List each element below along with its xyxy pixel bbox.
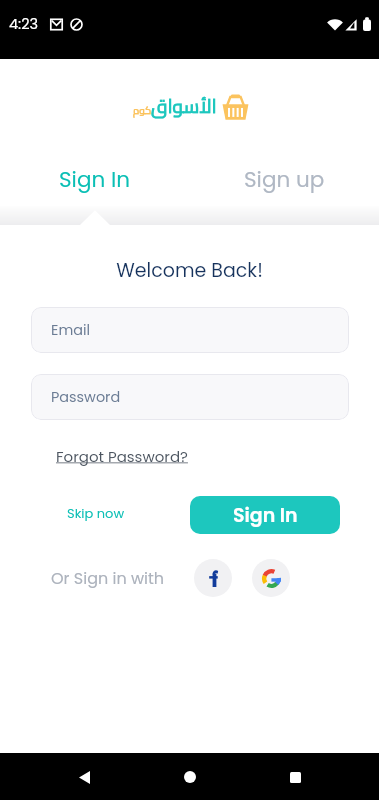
staticText: Forgot Password? [56,446,188,467]
button[interactable]: Recent apps [273,755,317,799]
staticText: Welcome Back! [0,257,379,284]
staticText: Sign In [233,502,298,529]
button[interactable]: Skip now [59,498,133,528]
staticText: Sign In [59,164,130,194]
button[interactable]: Forgot Password? [52,443,192,470]
staticText: Or Sign in with [51,567,165,589]
staticText: Sign up [244,164,325,194]
button[interactable]: Sign In [0,159,189,199]
button[interactable]: Sign In [190,496,340,534]
button[interactable]: Sign in with Facebook [194,559,232,597]
staticText: كوم. [133,101,154,120]
staticText: الأسواق [151,88,217,124]
button[interactable]: Back [62,755,106,799]
staticText: Password [51,387,121,407]
staticText: Email [51,320,91,340]
staticText: 4:23 [9,14,39,34]
button[interactable]: Sign up [189,159,379,199]
button[interactable]: Sign in with Google [252,559,290,597]
button[interactable]: Home [168,755,212,799]
staticText: Skip now [67,504,125,522]
button[interactable]: Email [31,307,349,353]
button[interactable]: Password [31,374,349,420]
